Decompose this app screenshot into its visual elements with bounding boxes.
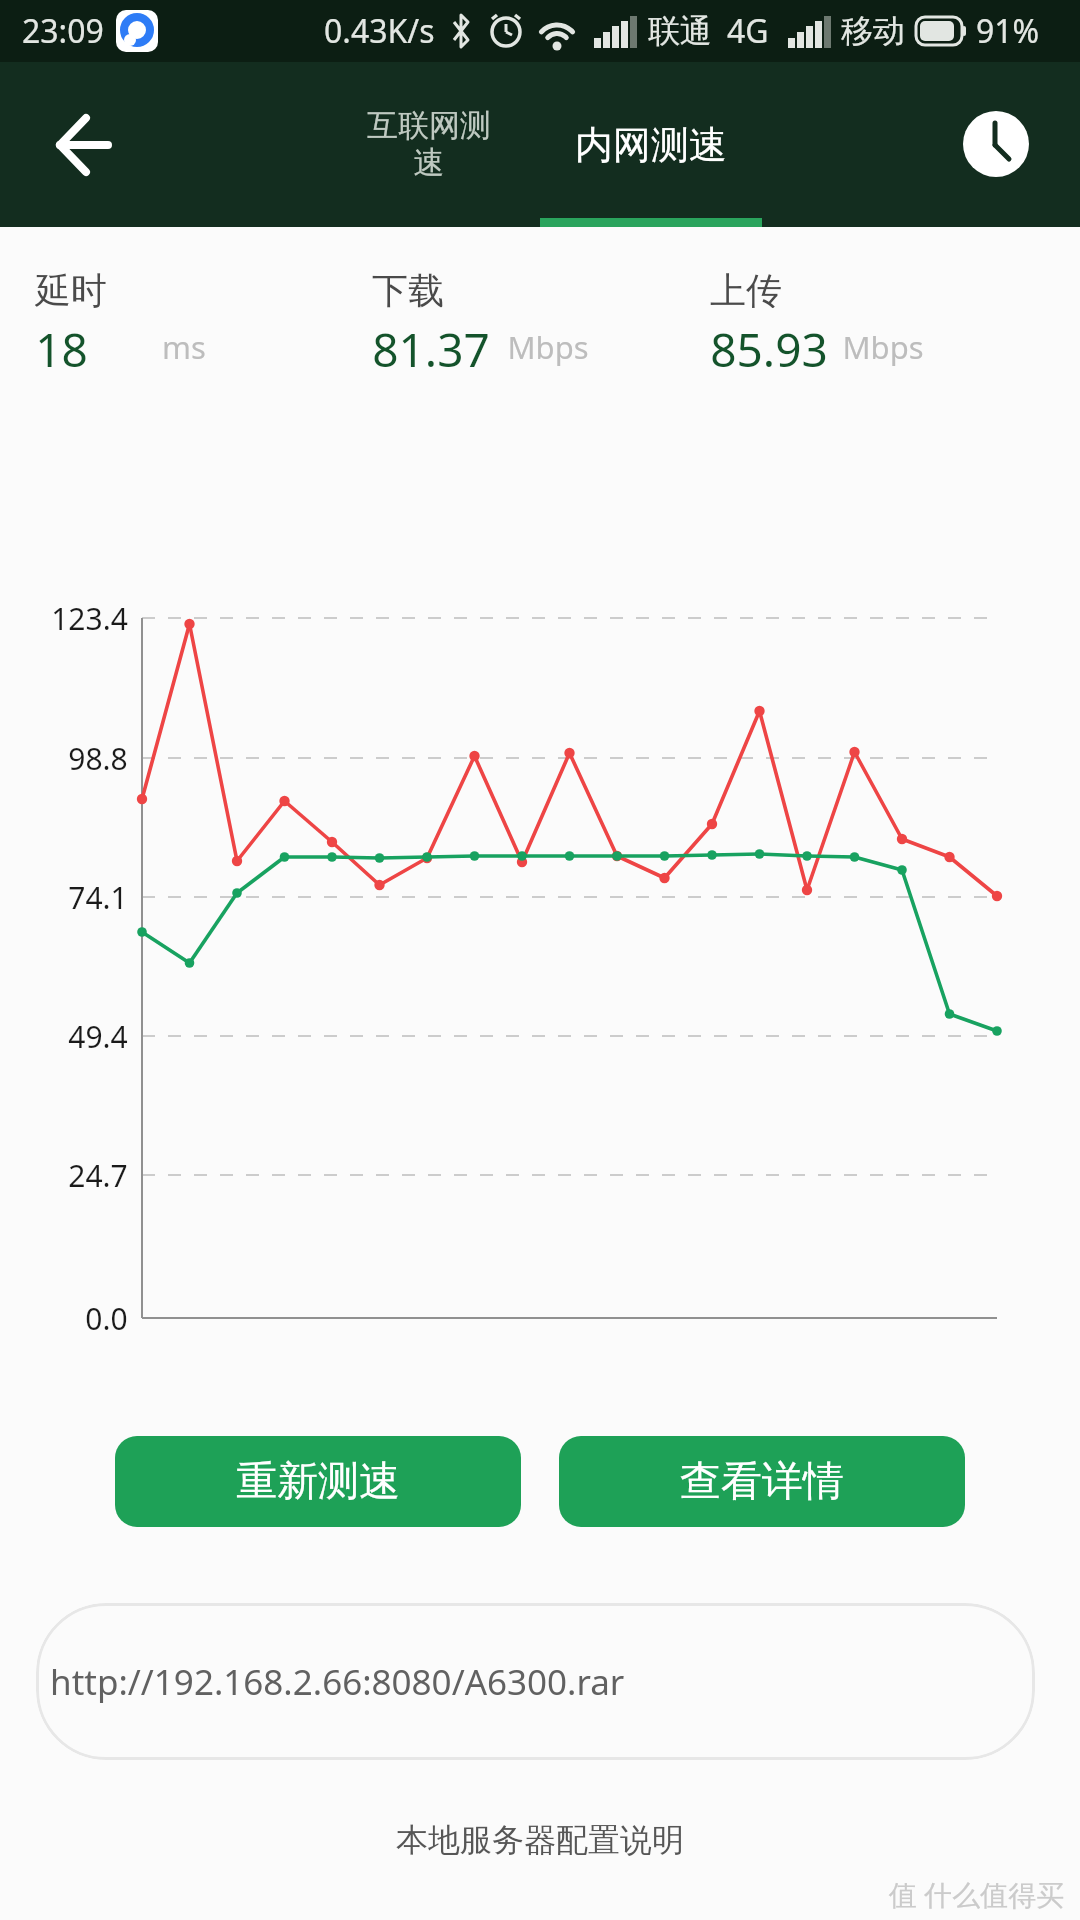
staticText: 85.93 — [710, 318, 828, 370]
staticText: 移动 — [841, 11, 905, 51]
button[interactable] — [36, 117, 136, 177]
staticText: 重新测速 — [236, 1456, 400, 1508]
staticText: 123.4 — [51, 598, 128, 639]
staticText: 0.0 — [85, 1298, 128, 1339]
staticText: 值 什么值得买 — [889, 1875, 1065, 1913]
button[interactable]: 查看详情 — [559, 1436, 965, 1527]
staticText: 内网测速 — [575, 121, 727, 169]
staticText: http://192.168.2.66:8080/A6300.rar — [50, 1658, 625, 1706]
staticText: 74.1 — [68, 877, 128, 918]
button[interactable]: 重新测速 — [115, 1436, 521, 1527]
staticText: 23:09 — [22, 9, 104, 53]
staticText: 联通 — [648, 11, 712, 51]
staticText: 98.8 — [68, 738, 128, 779]
staticText: 24.7 — [68, 1155, 128, 1196]
button[interactable] — [963, 111, 1029, 177]
staticText: 91% — [976, 9, 1040, 53]
staticText: 上传 — [710, 268, 782, 308]
staticText: 查看详情 — [680, 1456, 844, 1508]
button[interactable]: http://192.168.2.66:8080/A6300.rar — [36, 1603, 1035, 1760]
staticText: 延时 — [35, 268, 107, 308]
staticText: 互联网测 速 — [367, 106, 491, 183]
staticText: ms — [162, 326, 206, 366]
staticText: 18 — [35, 318, 88, 370]
staticText: 下载 — [372, 268, 444, 308]
staticText: 4G — [727, 9, 769, 53]
staticText: Mbps — [507, 326, 589, 366]
staticText: 0.43K/s — [324, 9, 435, 53]
staticText: 49.4 — [68, 1016, 128, 1057]
staticText: Mbps — [842, 326, 924, 366]
button[interactable]: 本地服务器配置说明 — [240, 1812, 840, 1868]
staticText: 本地服务器配置说明 — [396, 1820, 684, 1860]
staticText: 81.37 — [372, 318, 490, 370]
button[interactable]: 互联网测 速 — [318, 62, 540, 227]
button[interactable]: 内网测速 — [540, 62, 762, 227]
